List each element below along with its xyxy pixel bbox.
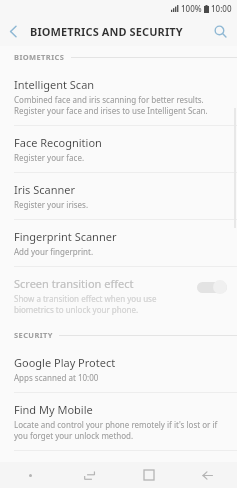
staticText: Show a transition effect when you use bi… (14, 293, 157, 315)
staticText: Iris Scanner (14, 182, 76, 197)
button[interactable]: Screen transition effect (0, 267, 237, 324)
button[interactable]: Search (207, 18, 233, 44)
button[interactable]: Find My Mobile (0, 393, 237, 451)
button[interactable]: Home (119, 462, 178, 488)
staticText: Fingerprint Scanner (14, 229, 117, 244)
button[interactable]: Screen transition effect toggle (197, 280, 227, 294)
button[interactable]: Recents (60, 462, 119, 488)
staticText: SECURITY (14, 330, 53, 340)
button[interactable]: Back (0, 18, 26, 44)
staticText: Combined face and iris scanning for bett… (14, 94, 208, 116)
staticText: BIOMETRICS (14, 52, 65, 62)
staticText: Add your fingerprint. (14, 246, 94, 257)
button[interactable]: Menu (0, 462, 60, 488)
button[interactable]: Back (178, 462, 237, 488)
staticText: Register your irises. (14, 199, 89, 210)
staticText: Google Play Protect (14, 355, 116, 370)
button[interactable]: Iris Scanner (0, 173, 237, 220)
staticText: Find My Mobile (14, 402, 93, 417)
button[interactable]: Google Play Protect (0, 346, 237, 393)
staticText: Locate and control your phone remotely i… (14, 419, 218, 441)
staticText: Intelligent Scan (14, 77, 95, 92)
staticText: Apps scanned at 10:00 (14, 372, 99, 383)
button[interactable]: Face Recognition (0, 126, 237, 173)
button[interactable]: Intelligent Scan (0, 68, 237, 126)
staticText: Screen transition effect (14, 276, 134, 291)
button[interactable]: Fingerprint Scanner (0, 220, 237, 267)
staticText: Face Recognition (14, 135, 102, 150)
staticText: 100% (181, 3, 202, 14)
staticText: Register your face. (14, 152, 85, 163)
staticText: 10:00 (211, 3, 232, 14)
staticText: BIOMETRICS AND SECURITY (30, 24, 183, 39)
